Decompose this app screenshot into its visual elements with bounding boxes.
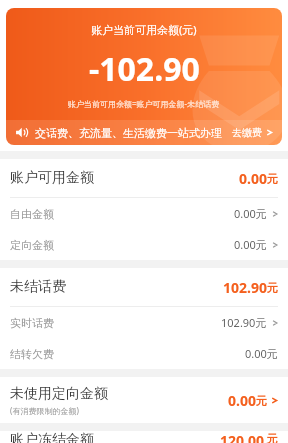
other: 公告: [15, 126, 28, 139]
button[interactable]: 公告: [6, 120, 282, 145]
staticText: 102.90元: [221, 315, 267, 330]
staticText: 定向金额: [10, 238, 234, 252]
button[interactable]: 未结话费: [0, 268, 288, 306]
staticText: 结转欠费: [10, 347, 245, 361]
staticText: 实时话费: [10, 316, 221, 330]
staticText: 元: [267, 172, 278, 186]
staticText: 交话费、充流量、生活缴费一站式办理: [35, 126, 222, 140]
staticText: 去缴费: [232, 126, 262, 139]
staticText: 0.00: [228, 391, 256, 410]
staticText: 未使用定向金额: [10, 385, 108, 403]
staticText: 自由金额: [10, 207, 234, 221]
staticText: -102.90: [89, 47, 200, 91]
staticText: 0.00元: [234, 237, 267, 252]
button[interactable]: 未使用定向金额: [0, 377, 288, 423]
button[interactable]: 账户可用金额: [0, 159, 288, 197]
staticText: 102.90: [223, 278, 267, 297]
staticText: 账户当前可用余额=账户可用金额-未结话费: [68, 98, 220, 109]
button[interactable]: 自由金额: [0, 198, 288, 229]
staticText: 账户当前可用余额(元): [91, 22, 197, 37]
staticText: 0.00元: [245, 346, 278, 361]
button[interactable]: 定向金额: [0, 229, 288, 260]
button[interactable]: 结转欠费: [0, 338, 288, 369]
button[interactable]: 账户当前可用余额(元): [6, 8, 282, 145]
staticText: 120.00: [220, 431, 264, 443]
button[interactable]: 账户冻结金额: [0, 431, 288, 443]
staticText: 元: [256, 394, 267, 408]
staticText: 未结话费: [10, 278, 66, 296]
staticText: 元: [264, 431, 278, 443]
button[interactable]: 实时话费: [0, 307, 288, 338]
staticText: (有消费限制的金额): [10, 405, 79, 416]
staticText: 账户冻结金额: [10, 431, 94, 443]
staticText: 0.00: [239, 169, 267, 188]
staticText: 0.00元: [234, 206, 267, 221]
staticText: 账户可用金额: [10, 169, 94, 187]
staticText: 元: [267, 281, 278, 295]
